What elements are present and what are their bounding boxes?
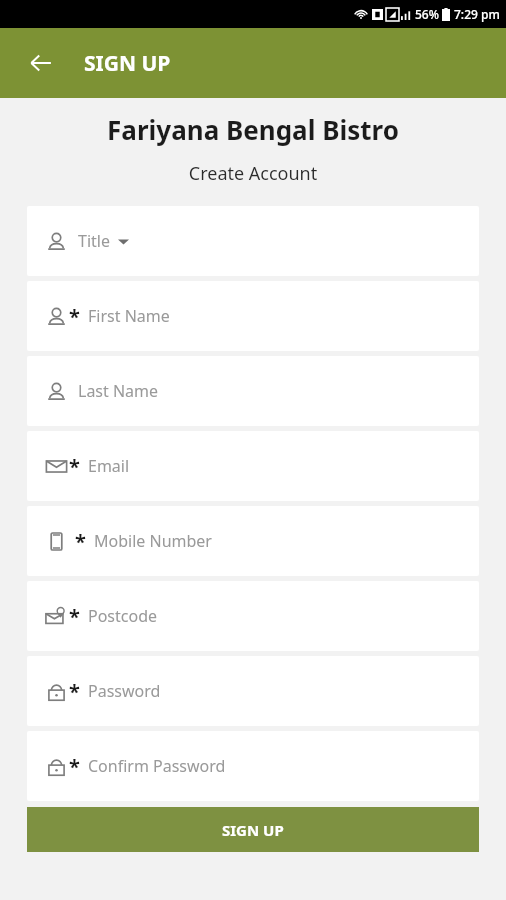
staticText: * — [69, 303, 80, 330]
button[interactable]: * — [27, 731, 479, 801]
staticText: * — [75, 528, 86, 555]
button[interactable]: Last Name — [27, 356, 479, 426]
button[interactable]: * — [27, 581, 479, 651]
staticText: First Name — [88, 305, 170, 327]
staticText: Create Account — [0, 161, 506, 186]
button[interactable]: Back — [20, 42, 62, 84]
staticText: SIGN UP — [222, 820, 284, 840]
staticText: SIGN UP — [84, 49, 171, 78]
staticText: Email — [88, 455, 130, 477]
button[interactable]: * — [27, 281, 479, 351]
staticText: 56% — [415, 6, 439, 22]
staticText: * — [69, 453, 80, 480]
staticText: Last Name — [78, 380, 159, 402]
staticText: 7:29 pm — [454, 6, 500, 22]
staticText: * — [69, 603, 80, 630]
staticText: Confirm Password — [88, 755, 226, 777]
staticText: Mobile Number — [94, 530, 212, 552]
staticText: Password — [88, 680, 161, 702]
button[interactable]: Title — [27, 206, 479, 276]
button[interactable]: * — [27, 656, 479, 726]
staticText: Postcode — [88, 605, 158, 627]
button[interactable]: * — [27, 431, 479, 501]
staticText: * — [69, 753, 80, 780]
staticText: Title — [78, 230, 110, 252]
staticText: * — [69, 678, 80, 705]
staticText: Fariyana Bengal Bistro — [0, 112, 506, 147]
button[interactable]: * — [27, 506, 479, 576]
button[interactable]: SIGN UP — [27, 807, 479, 852]
